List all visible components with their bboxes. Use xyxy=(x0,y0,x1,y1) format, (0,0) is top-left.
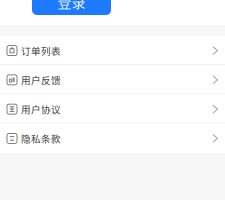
staticText: 订单列表 xyxy=(21,44,61,58)
button[interactable]: 订单列表 xyxy=(0,36,225,65)
staticText: 隐私条款 xyxy=(21,131,61,145)
button[interactable]: 用户协议 xyxy=(0,94,225,124)
staticText: 登录 xyxy=(57,0,85,12)
button[interactable]: 登录 xyxy=(32,0,111,15)
staticText: 用户反馈 xyxy=(21,73,61,87)
button[interactable]: 用户反馈 xyxy=(0,65,225,94)
staticText: 用户协议 xyxy=(21,102,61,116)
button[interactable]: 隐私条款 xyxy=(0,124,225,153)
